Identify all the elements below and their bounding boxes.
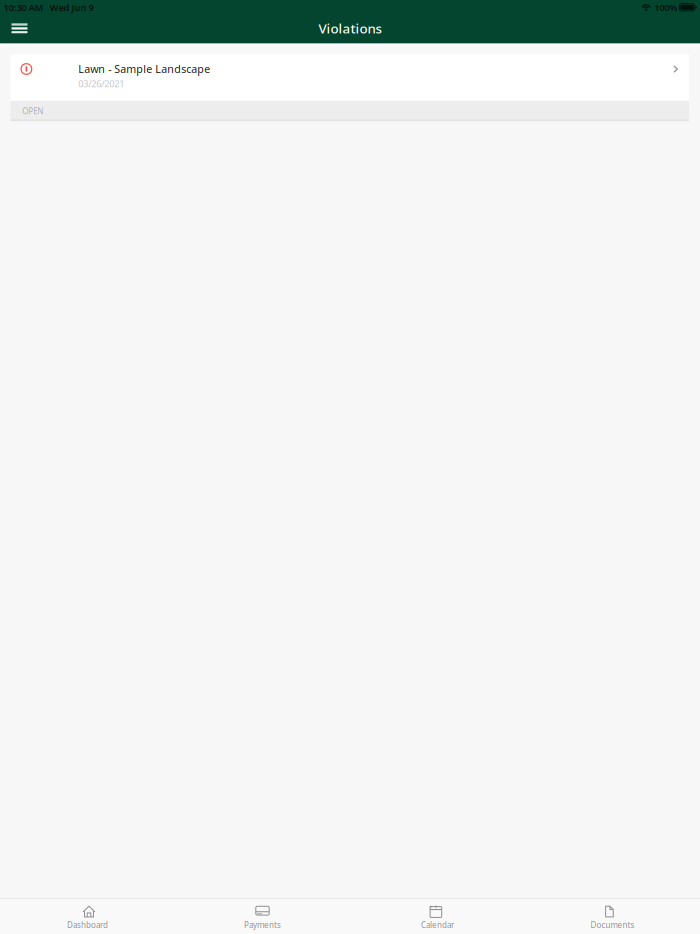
button[interactable]: Dashboard [0, 899, 175, 934]
staticText: Calendar [421, 920, 454, 930]
staticText: Lawn - Sample Landscape [78, 62, 210, 76]
button[interactable]: Lawn - Sample Landscape [10, 54, 689, 101]
button[interactable]: Menu [0, 14, 39, 42]
button[interactable]: Payments [175, 899, 350, 934]
staticText: 10:30 AM [3, 1, 43, 13]
staticText: Documents [590, 920, 634, 930]
staticText: Dashboard [67, 920, 108, 930]
button[interactable]: Calendar [350, 899, 525, 934]
staticText: Wed Jun 9 [49, 1, 93, 13]
staticText: 03/26/2021 [78, 77, 124, 90]
staticText: Violations [318, 19, 381, 37]
button[interactable]: Documents [525, 899, 700, 934]
staticText: Payments [244, 920, 281, 930]
staticText: 100% [654, 1, 677, 13]
staticText: OPEN [22, 106, 43, 116]
